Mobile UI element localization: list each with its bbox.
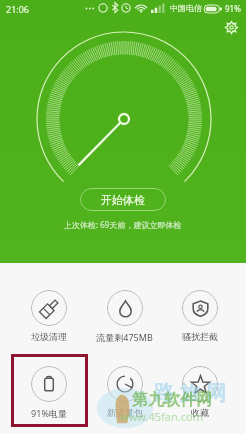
staticText: 第九软件网 bbox=[132, 390, 212, 410]
button[interactable]: Junk cleanup bbox=[11, 290, 87, 342]
button[interactable]: Data usage bbox=[87, 290, 162, 343]
button[interactable]: Timer bbox=[87, 366, 162, 418]
staticText: 21:06 bbox=[6, 3, 30, 15]
button[interactable]: Battery bbox=[11, 366, 87, 419]
button[interactable]: Favourites bbox=[162, 366, 237, 418]
staticText: 垃圾清理 bbox=[31, 331, 67, 342]
button[interactable]: Harassment block bbox=[162, 290, 237, 342]
staticText: 91% bbox=[225, 3, 241, 14]
staticText: 收藏 bbox=[191, 407, 209, 418]
staticText: 路旅网 bbox=[151, 381, 229, 406]
staticText: 91%电量 bbox=[31, 407, 67, 419]
button[interactable]: Settings bbox=[219, 15, 243, 39]
staticText: 新流量包 bbox=[107, 407, 143, 418]
button[interactable]: 开始体检 bbox=[80, 188, 166, 211]
staticText: 开始体检 bbox=[101, 193, 145, 207]
staticText: 上次体检: 69天前，建议立即体检 bbox=[64, 219, 182, 230]
staticText: 骚扰拦截 bbox=[182, 331, 218, 342]
staticText: www.45fan.com bbox=[120, 409, 203, 424]
staticText: 流量剩475MB bbox=[96, 331, 153, 343]
staticText: 中国电信 bbox=[170, 3, 202, 13]
